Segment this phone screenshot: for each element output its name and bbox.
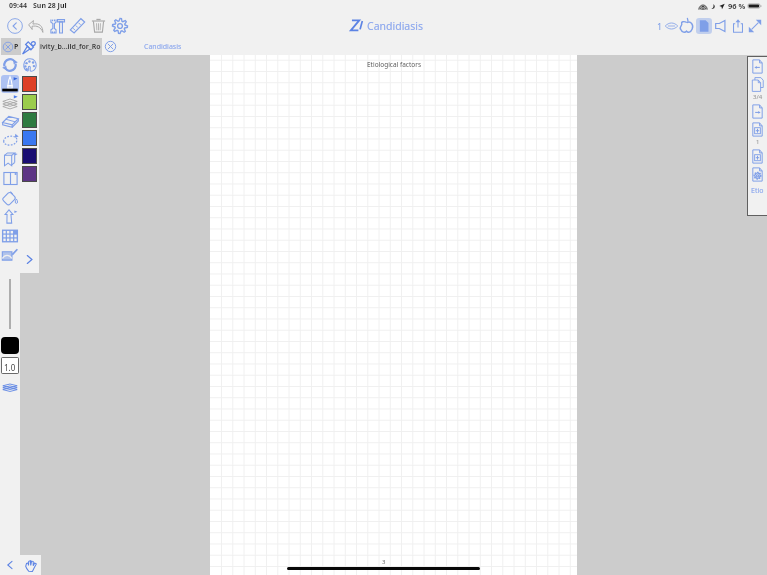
button[interactable]: Current colour	[1, 337, 19, 354]
button[interactable]: Rotate	[0, 55, 20, 74]
staticText: Etio	[751, 186, 764, 196]
staticText: Sun 28 Jul	[33, 1, 67, 11]
button[interactable]: Candidiasis	[102, 38, 212, 55]
button[interactable]: Bookmark	[0, 150, 20, 169]
staticText: Pr	[14, 42, 21, 52]
button[interactable]: Settings	[109, 15, 130, 36]
button[interactable]: Document	[695, 17, 712, 34]
button[interactable]: Ruler	[67, 15, 88, 36]
button[interactable]: Layers	[1, 380, 19, 394]
staticText: 1.0	[4, 362, 16, 373]
button[interactable]: Pr	[1, 38, 21, 55]
button[interactable]: Pages	[664, 19, 678, 33]
button[interactable]: Pen width	[2, 358, 18, 373]
button[interactable]: Palette	[20, 55, 39, 74]
staticText: 3/4	[753, 93, 763, 101]
button[interactable]: Tools	[46, 15, 67, 36]
staticText: 96 %	[728, 1, 746, 11]
button[interactable]: Undo	[25, 15, 46, 36]
staticText: 1	[657, 20, 663, 32]
staticText: 3	[382, 558, 386, 566]
button[interactable]: Share	[729, 17, 746, 34]
button[interactable]: Add page before	[748, 120, 767, 138]
button[interactable]: Shape	[0, 207, 20, 226]
staticText: 09:44	[9, 1, 27, 11]
button[interactable]: Image	[0, 245, 20, 264]
button[interactable]: Delete	[88, 15, 109, 36]
staticText: Etiological factors	[367, 60, 422, 69]
staticText: ivity_b...ild_for_Ro...	[40, 42, 102, 52]
button[interactable]: Layers	[0, 93, 20, 112]
button[interactable]: Lasso	[0, 131, 20, 150]
button[interactable]: Full screen	[746, 17, 763, 34]
button[interactable]: Sound	[712, 17, 729, 34]
button[interactable]: Pen tool	[0, 74, 20, 93]
button[interactable]: More colors	[20, 250, 39, 269]
button[interactable]: Eraser	[0, 112, 20, 131]
button[interactable]: Add page after	[748, 147, 767, 165]
button[interactable]: Pan tool	[20, 555, 41, 575]
staticText: Candidiasis	[367, 19, 424, 33]
button[interactable]: Color picker	[21, 39, 37, 55]
button[interactable]: Apple Pencil	[678, 17, 695, 34]
button[interactable]: Back	[4, 15, 25, 36]
button[interactable]: Table	[0, 226, 20, 245]
staticText: Candidiasis	[144, 42, 182, 52]
staticText: 1	[756, 138, 760, 146]
button[interactable]: Fill	[0, 188, 20, 207]
button[interactable]: Page settings	[748, 165, 767, 183]
button[interactable]: Next page	[748, 102, 767, 120]
button[interactable]: ivity_b...ild_for_Ro...	[39, 38, 102, 55]
button[interactable]: Split page	[0, 169, 20, 188]
button[interactable]: Duplicate page	[748, 75, 767, 93]
button[interactable]: Previous page	[748, 57, 767, 75]
button[interactable]: Collapse toolbar	[0, 555, 20, 575]
